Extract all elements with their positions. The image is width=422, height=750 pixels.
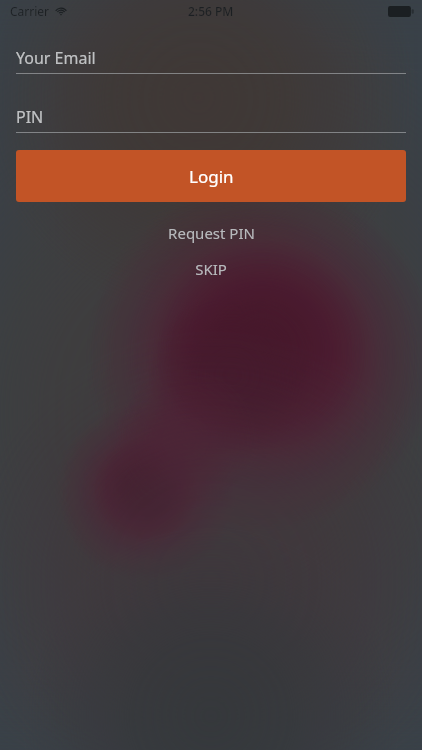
staticText: Your Email — [16, 47, 96, 69]
staticText: Login — [189, 165, 234, 188]
button[interactable]: Request PIN — [0, 218, 422, 248]
staticText: PIN — [16, 106, 44, 128]
staticText: Request PIN — [168, 223, 255, 243]
button[interactable]: Login — [16, 150, 406, 202]
button[interactable]: SKIP — [0, 254, 422, 284]
staticText: 2:56 PM — [188, 3, 234, 19]
button[interactable]: Your Email input field — [0, 43, 422, 74]
staticText: SKIP — [195, 259, 227, 279]
staticText: Carrier — [10, 3, 50, 19]
button[interactable]: PIN input field — [0, 102, 422, 133]
